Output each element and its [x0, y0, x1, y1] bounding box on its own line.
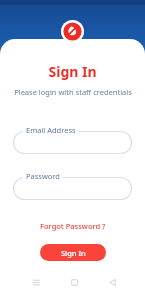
button[interactable]: Recents — [28, 274, 44, 290]
button[interactable]: Forgot Password ? — [36, 219, 110, 233]
staticText: Sign In — [61, 248, 86, 258]
button[interactable]: Home — [66, 274, 82, 290]
other: App logo — [61, 20, 84, 43]
button[interactable]: Password — [13, 170, 132, 200]
button[interactable]: Email Address — [13, 124, 132, 154]
staticText: Password — [26, 171, 60, 181]
staticText: Forgot Password ? — [40, 221, 106, 231]
staticText: Please login with staff credentials — [14, 87, 132, 97]
button[interactable]: Sign In — [40, 244, 106, 261]
staticText: Email Address — [26, 125, 76, 135]
staticText: Sign In — [48, 62, 97, 81]
button[interactable]: Back — [104, 274, 120, 290]
